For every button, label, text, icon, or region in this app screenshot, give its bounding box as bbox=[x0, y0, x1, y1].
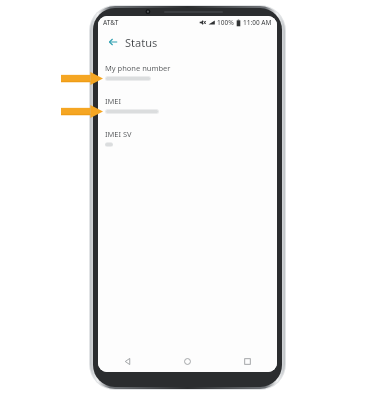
staticText: 11:00 AM bbox=[243, 18, 272, 27]
staticText: IMEI SV bbox=[105, 129, 132, 139]
staticText: AT&T bbox=[103, 18, 119, 27]
button[interactable]: Back bbox=[98, 350, 157, 372]
staticText: IMEI bbox=[105, 96, 122, 106]
button[interactable]: Back bbox=[105, 34, 121, 50]
staticText: My phone number bbox=[105, 63, 171, 73]
staticText: 100% bbox=[217, 18, 234, 27]
button[interactable]: IMEI SV bbox=[98, 128, 277, 148]
button[interactable]: IMEI bbox=[98, 95, 277, 115]
button[interactable]: My phone number bbox=[98, 62, 277, 82]
button[interactable]: Recent apps bbox=[217, 350, 277, 372]
button[interactable]: Home bbox=[157, 350, 217, 372]
staticText: Status bbox=[125, 35, 158, 50]
